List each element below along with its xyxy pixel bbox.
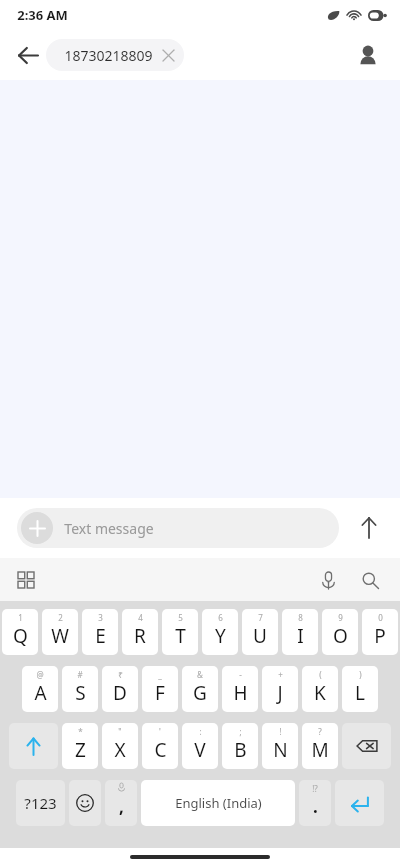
button[interactable]: _ [142,666,178,712]
button[interactable]: Toolbox [8,562,44,598]
staticText: 5 [178,612,183,623]
button[interactable]: English (India) [141,780,295,826]
staticText: ₹ [118,669,123,680]
staticText: S [75,680,86,706]
staticText: Y [215,623,226,649]
staticText: . [313,795,318,818]
staticText: 3 [98,612,103,623]
staticText: 1 [18,612,23,623]
staticText: Text message [64,519,154,538]
staticText: ' [159,726,161,737]
button[interactable]: Emoji [69,780,101,826]
staticText: _ [158,669,162,680]
button[interactable]: ! [262,723,298,769]
staticText: English (India) [175,794,262,812]
button[interactable]: Period [299,780,331,826]
staticText: X [114,737,126,763]
button[interactable]: ' [142,723,178,769]
button[interactable]: 8 [282,609,318,655]
staticText: ! [279,726,282,737]
button[interactable]: ? [302,723,338,769]
staticText: E [95,623,106,649]
staticText: 4 [138,612,143,623]
button[interactable]: - [222,666,258,712]
staticText: G [193,680,207,706]
staticText: 6 [218,612,223,623]
button[interactable]: Text message [17,508,339,548]
staticText: 9 [338,612,343,623]
button[interactable]: 2 [42,609,78,655]
staticText: ( [319,669,322,680]
staticText: I [297,623,304,649]
button[interactable]: 5 [162,609,198,655]
staticText: U [253,623,267,649]
button[interactable]: " [102,723,138,769]
button[interactable]: Enter [335,780,384,826]
staticText: - [239,669,242,680]
staticText: 18730218809 [64,46,153,65]
staticText: ? [318,726,322,737]
staticText: : [199,726,202,737]
button[interactable]: Comma [105,780,137,826]
button[interactable]: Contact [348,35,388,75]
button[interactable]: Shift [9,723,58,769]
button[interactable]: 6 [202,609,238,655]
staticText: 2 [58,612,63,623]
button[interactable]: Symbols [16,780,65,826]
button[interactable]: Backspace [342,723,391,769]
staticText: V [194,737,206,763]
staticText: # [77,669,83,680]
staticText: !? [312,783,318,794]
staticText: D [113,680,127,706]
staticText: K [314,680,326,706]
staticText: A [34,680,47,706]
staticText: L [355,680,365,706]
staticText: F [155,680,165,706]
staticText: , [119,795,124,818]
button[interactable]: 1 [2,609,38,655]
staticText: N [273,737,288,763]
staticText: * [78,726,83,737]
staticText: H [233,680,248,706]
staticText: + [278,669,283,680]
staticText: 0 [378,612,383,623]
staticText: R [134,623,146,649]
button[interactable]: Voice input [310,562,346,598]
staticText: 8 [298,612,303,623]
button[interactable]: 7 [242,609,278,655]
staticText: @ [36,669,44,680]
button[interactable]: 9 [322,609,358,655]
staticText: ?123 [24,793,57,813]
staticText: ; [239,726,242,737]
staticText: M [311,737,329,763]
button[interactable]: 0 [362,609,398,655]
button[interactable]: 18730218809 [46,39,184,71]
staticText: & [197,669,203,680]
button[interactable]: : [182,723,218,769]
button[interactable]: Send [348,507,390,549]
staticText: B [234,737,247,763]
button[interactable]: Back [8,35,48,75]
button[interactable]: 3 [82,609,118,655]
button[interactable]: Search [352,562,388,598]
button[interactable]: # [62,666,98,712]
button[interactable]: 4 [122,609,158,655]
button[interactable]: ; [222,723,258,769]
staticText: J [277,680,283,706]
button[interactable]: + [262,666,298,712]
button[interactable]: ₹ [102,666,138,712]
staticText: T [175,623,186,649]
button[interactable]: * [62,723,98,769]
staticText: Z [75,737,86,763]
staticText: 2:36 AM [17,6,68,24]
staticText: 7 [258,612,263,623]
button[interactable]: ) [342,666,378,712]
button[interactable]: ( [302,666,338,712]
staticText: Q [13,623,28,649]
button[interactable]: @ [22,666,58,712]
staticText: W [51,623,69,649]
staticText: O [333,623,348,649]
staticText: " [118,726,122,737]
button[interactable]: & [182,666,218,712]
staticText: P [374,623,386,649]
